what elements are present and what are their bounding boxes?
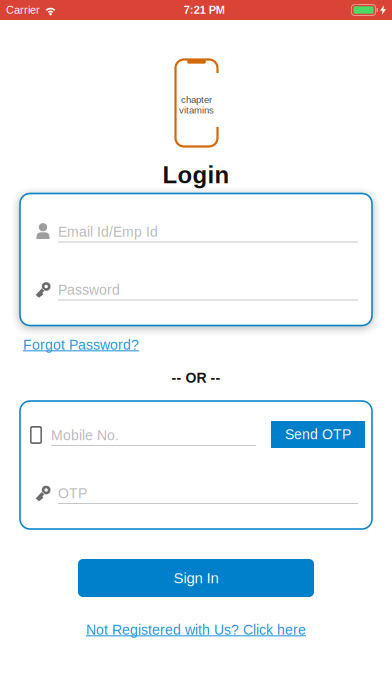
staticText: Email Id/Emp Id (58, 224, 158, 240)
staticText: chapter (181, 94, 212, 105)
staticText: Sign In (173, 570, 218, 586)
staticText: Forgot Password? (23, 337, 139, 353)
staticText: vitamins (179, 105, 214, 116)
staticText: Login (162, 162, 229, 188)
button[interactable]: Not Registered with Us? Click here (86, 618, 306, 642)
button[interactable]: Forgot Password? (23, 333, 139, 357)
staticText: Password (58, 282, 120, 298)
staticText: Send OTP (285, 427, 351, 442)
staticText: -- OR -- (171, 370, 220, 386)
staticText: Not Registered with Us? Click here (86, 622, 306, 638)
button[interactable]: Sign In (78, 559, 314, 597)
staticText: OTP (58, 486, 87, 501)
staticText: Mobile No. (51, 428, 119, 443)
button[interactable]: Send OTP (271, 421, 365, 448)
staticText: 7:21 PM (184, 4, 225, 16)
staticText: Carrier (6, 4, 40, 16)
